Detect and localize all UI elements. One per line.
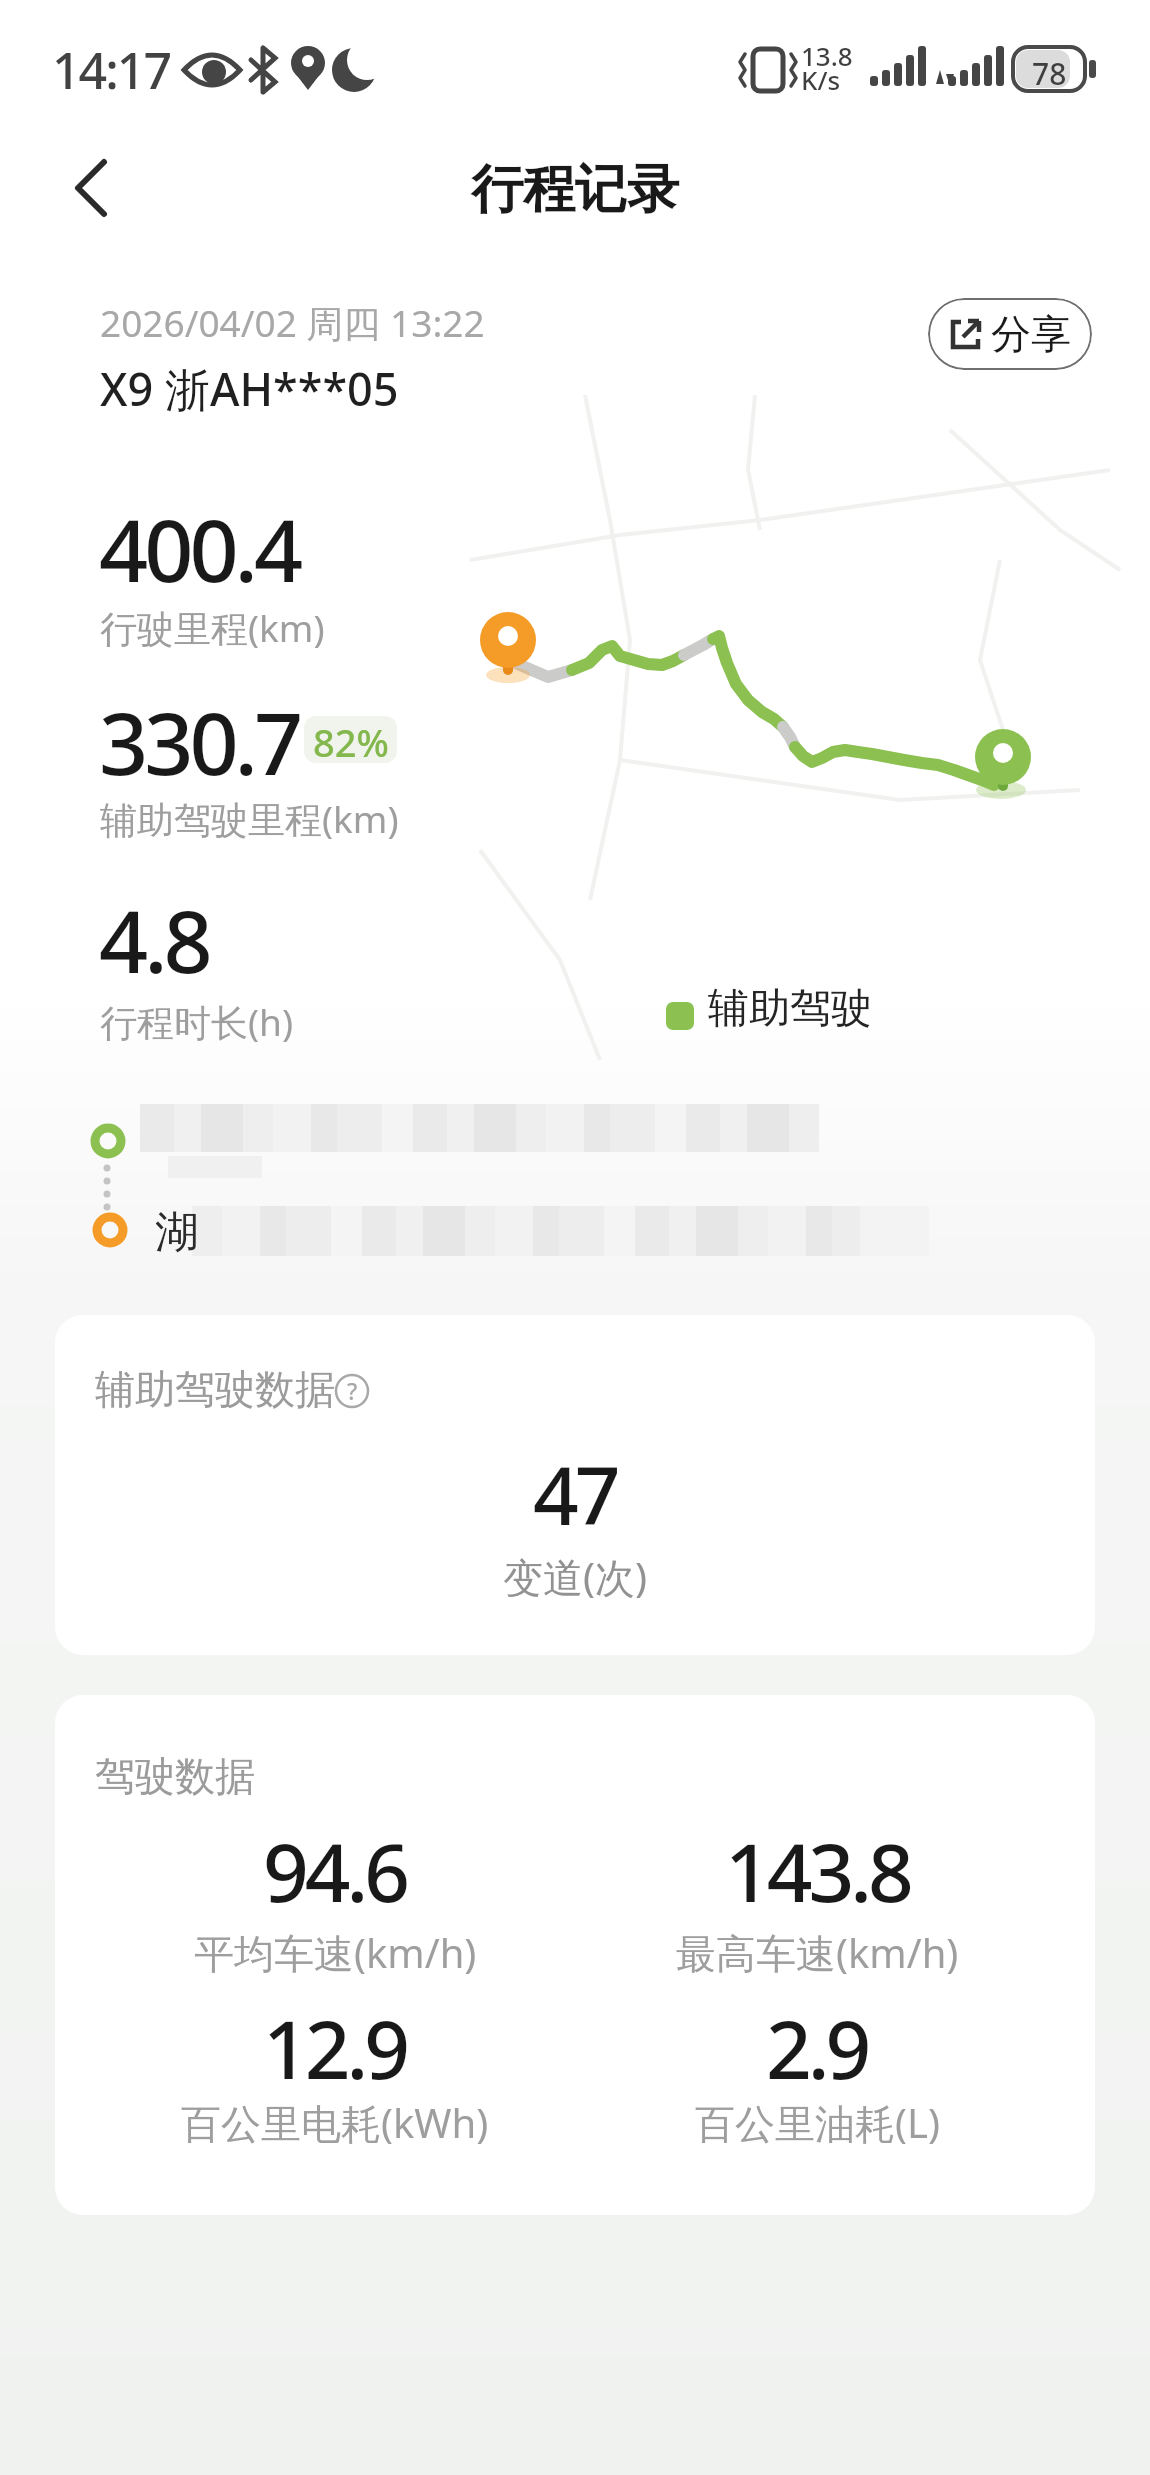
staticText: 143.8 [725,1816,910,1925]
staticText: 4.8 [99,881,209,998]
staticText: 2026/04/02 周四 13:22 [100,297,485,348]
staticText: 82% [313,716,389,763]
staticText: 驾驶数据 [95,1751,255,1801]
button[interactable]: 分享 [928,298,1092,370]
staticText: 94.6 [263,1816,407,1925]
staticText: 百公里电耗(kWh) [181,2095,489,2150]
staticText: 行程记录 [471,157,679,223]
staticText: 辅助驾驶里程(km) [100,793,399,844]
staticText: 400.4 [99,490,300,607]
staticText: 78 [1032,53,1067,94]
staticText: 行程时长(h) [100,996,294,1047]
staticText: X9 浙AH***05 [100,358,399,419]
staticText: 12.9 [263,1993,407,2102]
staticText: 14:17 [52,36,170,104]
staticText: 辅助驾驶数据 [95,1364,335,1414]
staticText: 13.8 [801,38,853,73]
staticText: 最高车速(km/h) [676,1925,959,1980]
staticText: 330.7 [99,683,300,800]
staticText: 分享 [991,309,1071,359]
staticText: ? [347,1375,358,1406]
staticText: 2.9 [766,1993,868,2102]
staticText: 行驶里程(km) [100,602,325,653]
staticText: 47 [533,1439,617,1548]
staticText: K/s [801,62,841,97]
staticText: 辅助驾驶 [708,983,872,1035]
staticText: 平均车速(km/h) [194,1925,477,1980]
staticText: 变道(次) [503,1549,647,1604]
staticText: 湖 [155,1205,199,1260]
staticText: 百公里油耗(L) [695,2095,940,2150]
button[interactable] [40,140,160,240]
